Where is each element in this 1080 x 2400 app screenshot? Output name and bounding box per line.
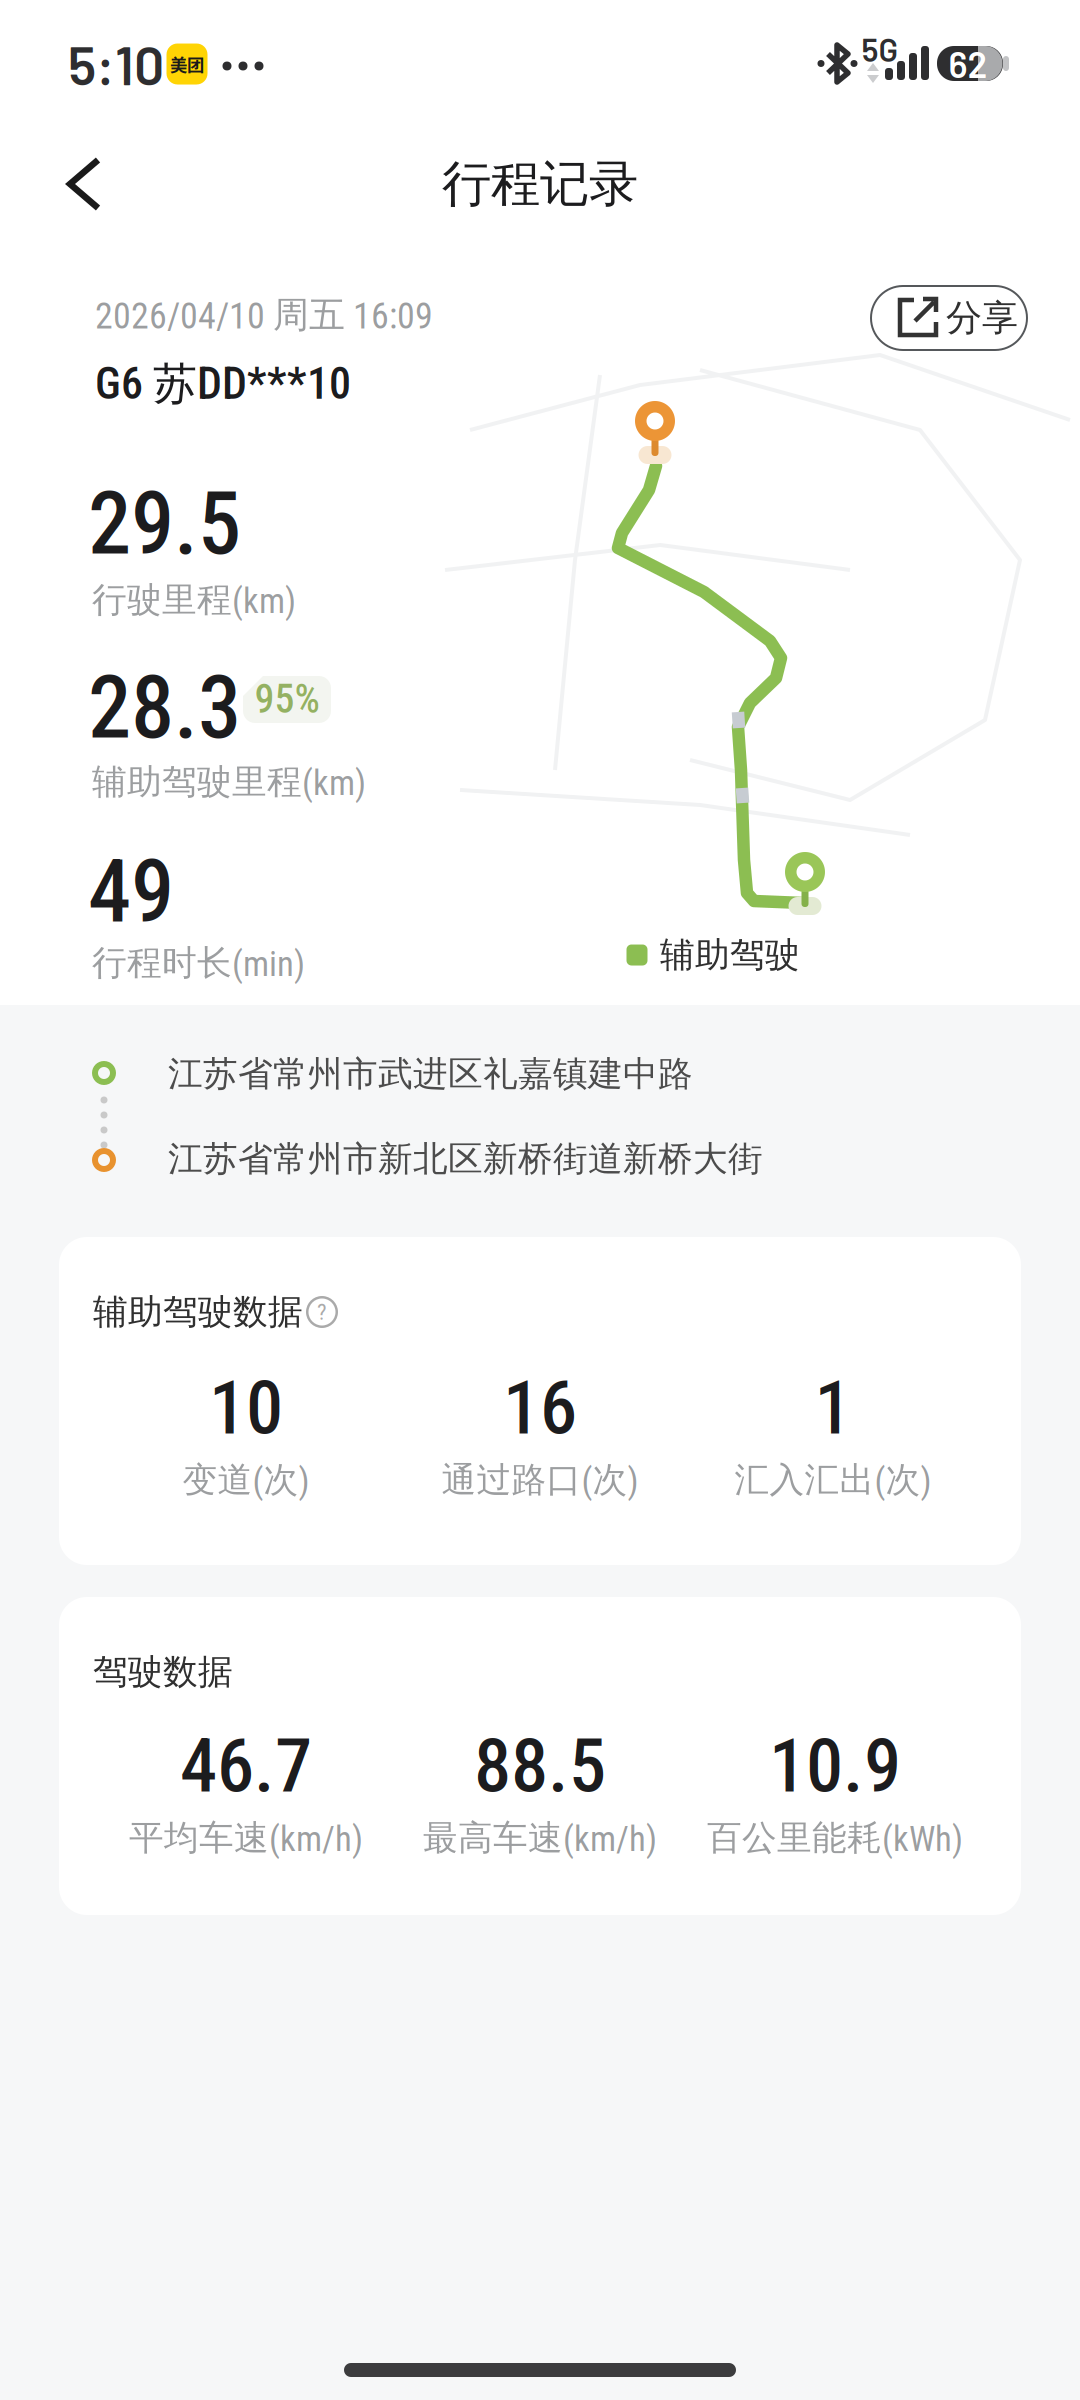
staticText: 美团	[170, 51, 204, 77]
staticText: 1	[814, 1364, 851, 1452]
staticText: 辅助驾驶里程(km)	[92, 760, 366, 804]
staticText: 江苏省常州市武进区礼嘉镇建中路	[168, 1052, 693, 1096]
staticText: 行驶里程(km)	[92, 578, 296, 622]
staticText: 行程时长(min)	[92, 941, 305, 985]
staticText: 分享	[946, 295, 1018, 341]
staticText: 49	[88, 841, 174, 943]
staticText: 29.5	[88, 473, 241, 575]
staticText: 46.7	[180, 1722, 312, 1810]
staticText: 88.5	[474, 1722, 606, 1810]
button[interactable]	[0, 151, 120, 217]
button[interactable]: 分享	[870, 285, 1028, 351]
button[interactable]: ?	[302, 1292, 342, 1332]
staticText: 最高车速(km/h)	[423, 1816, 657, 1860]
staticText: 平均车速(km/h)	[129, 1816, 363, 1860]
staticText: 5G	[861, 30, 898, 68]
staticText: 江苏省常州市新北区新桥街道新桥大街	[168, 1137, 763, 1181]
staticText: 95%	[254, 676, 319, 722]
staticText: 汇入汇出(次)	[734, 1458, 931, 1502]
staticText: 16	[503, 1364, 577, 1452]
staticText: 驾驶数据	[93, 1650, 233, 1694]
staticText: 28.3	[88, 657, 241, 759]
staticText: 10	[209, 1364, 283, 1452]
staticText: G6 苏DD***10	[95, 356, 351, 412]
staticText: 5:10	[68, 32, 164, 96]
staticText: 百公里能耗(kWh)	[707, 1816, 963, 1860]
staticText: 2026/04/10 周五 16:09	[95, 292, 433, 338]
staticText: 变道(次)	[182, 1458, 309, 1502]
staticText: ?	[317, 1299, 327, 1325]
staticText: 辅助驾驶	[660, 933, 800, 977]
staticText: 通过路口(次)	[441, 1458, 638, 1502]
staticText: 10.9	[769, 1722, 901, 1810]
staticText: 行程记录	[442, 153, 638, 215]
staticText: 62	[948, 42, 987, 85]
staticText: 辅助驾驶数据	[93, 1290, 303, 1334]
